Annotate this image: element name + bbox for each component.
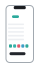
button[interactable]: Primary action	[12, 15, 19, 18]
